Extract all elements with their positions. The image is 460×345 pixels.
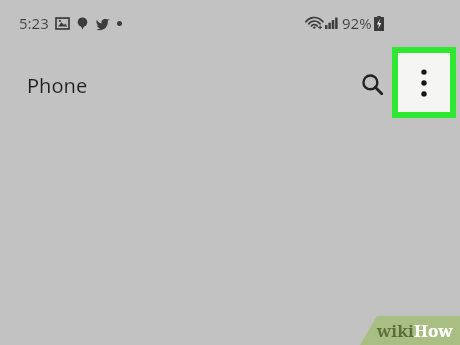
staticText: 5:23 <box>19 13 49 33</box>
staticText: 92% <box>342 13 372 33</box>
staticText: wiki <box>376 319 414 342</box>
staticText: Phone <box>27 72 88 99</box>
staticText: How <box>414 319 453 342</box>
button[interactable]: Search <box>356 68 389 101</box>
button[interactable]: More options <box>398 53 450 112</box>
